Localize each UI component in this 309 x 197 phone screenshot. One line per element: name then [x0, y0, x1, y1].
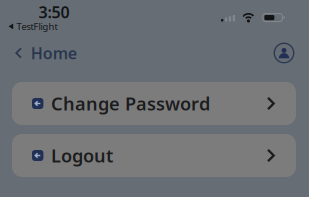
button[interactable]: Logout [12, 134, 296, 177]
button[interactable]: Change Password [12, 82, 296, 125]
staticText: Home [31, 42, 77, 64]
button[interactable]: Account [268, 38, 300, 68]
staticText: TestFlight [16, 20, 57, 33]
staticText: 3:50 [38, 1, 69, 23]
button[interactable]: Home [0, 37, 87, 69]
staticText: Change Password [51, 91, 210, 116]
staticText: Logout [51, 143, 113, 168]
